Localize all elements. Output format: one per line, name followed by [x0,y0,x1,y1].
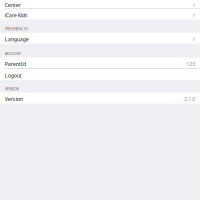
button[interactable]: Logout [0,69,200,80]
staticText: Logout [5,72,22,79]
staticText: 2.1.0 [184,95,195,103]
button[interactable]: Language [0,33,200,44]
button[interactable]: iCare Kids [0,9,200,20]
staticText: ACCOUNT [5,51,21,56]
button[interactable]: Center [0,0,200,8]
staticText: iCare Kids [5,12,28,19]
button[interactable]: ParentId [0,57,200,68]
staticText: 123 [186,60,195,67]
staticText: PREFERENCES [5,26,28,31]
staticText: ParentId [5,60,26,67]
button[interactable]: Version [0,93,200,104]
staticText: Center [5,1,21,9]
staticText: VERSION [5,86,19,91]
staticText: Language [5,36,29,43]
staticText: Version [5,95,23,103]
